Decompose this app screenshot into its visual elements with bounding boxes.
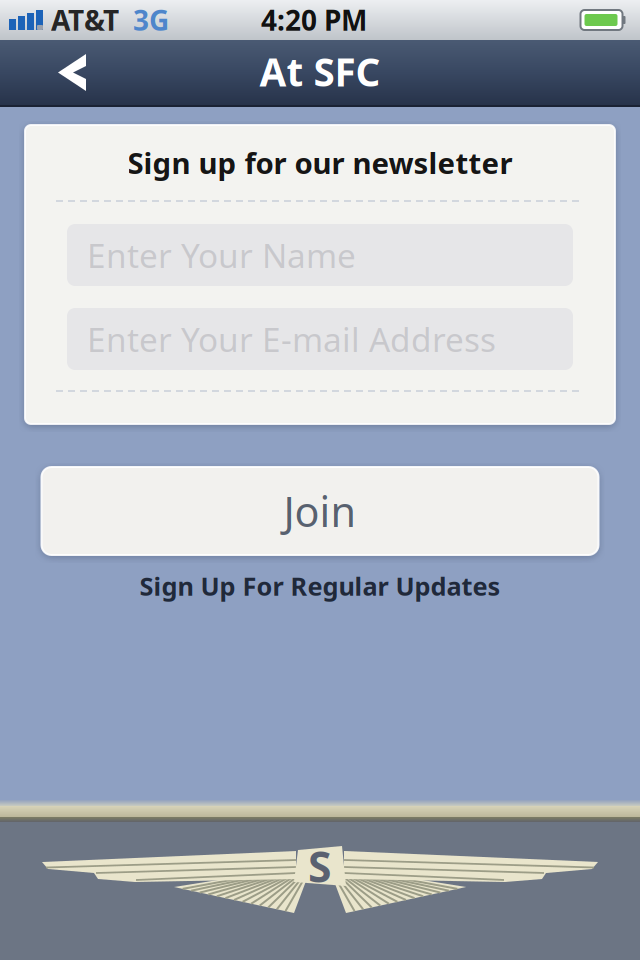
staticText: AT&T bbox=[51, 1, 119, 39]
button[interactable]: Join bbox=[41, 467, 598, 555]
staticText: Sign up for our newsletter bbox=[127, 143, 512, 182]
staticText: Enter Your Name bbox=[87, 233, 356, 277]
staticText: Sign Up For Regular Updates bbox=[139, 569, 500, 603]
staticText: 3G bbox=[133, 1, 169, 39]
button[interactable]: Back bbox=[0, 40, 116, 107]
staticText: Enter Your E-mail Address bbox=[87, 317, 496, 361]
staticText: At SFC bbox=[259, 46, 380, 97]
button[interactable]: Enter Your E-mail Address bbox=[67, 308, 573, 370]
button[interactable]: Enter Your Name bbox=[67, 224, 573, 286]
staticText: Join bbox=[283, 484, 356, 538]
staticText: S bbox=[308, 838, 332, 894]
staticText: 4:20 PM bbox=[261, 1, 367, 39]
